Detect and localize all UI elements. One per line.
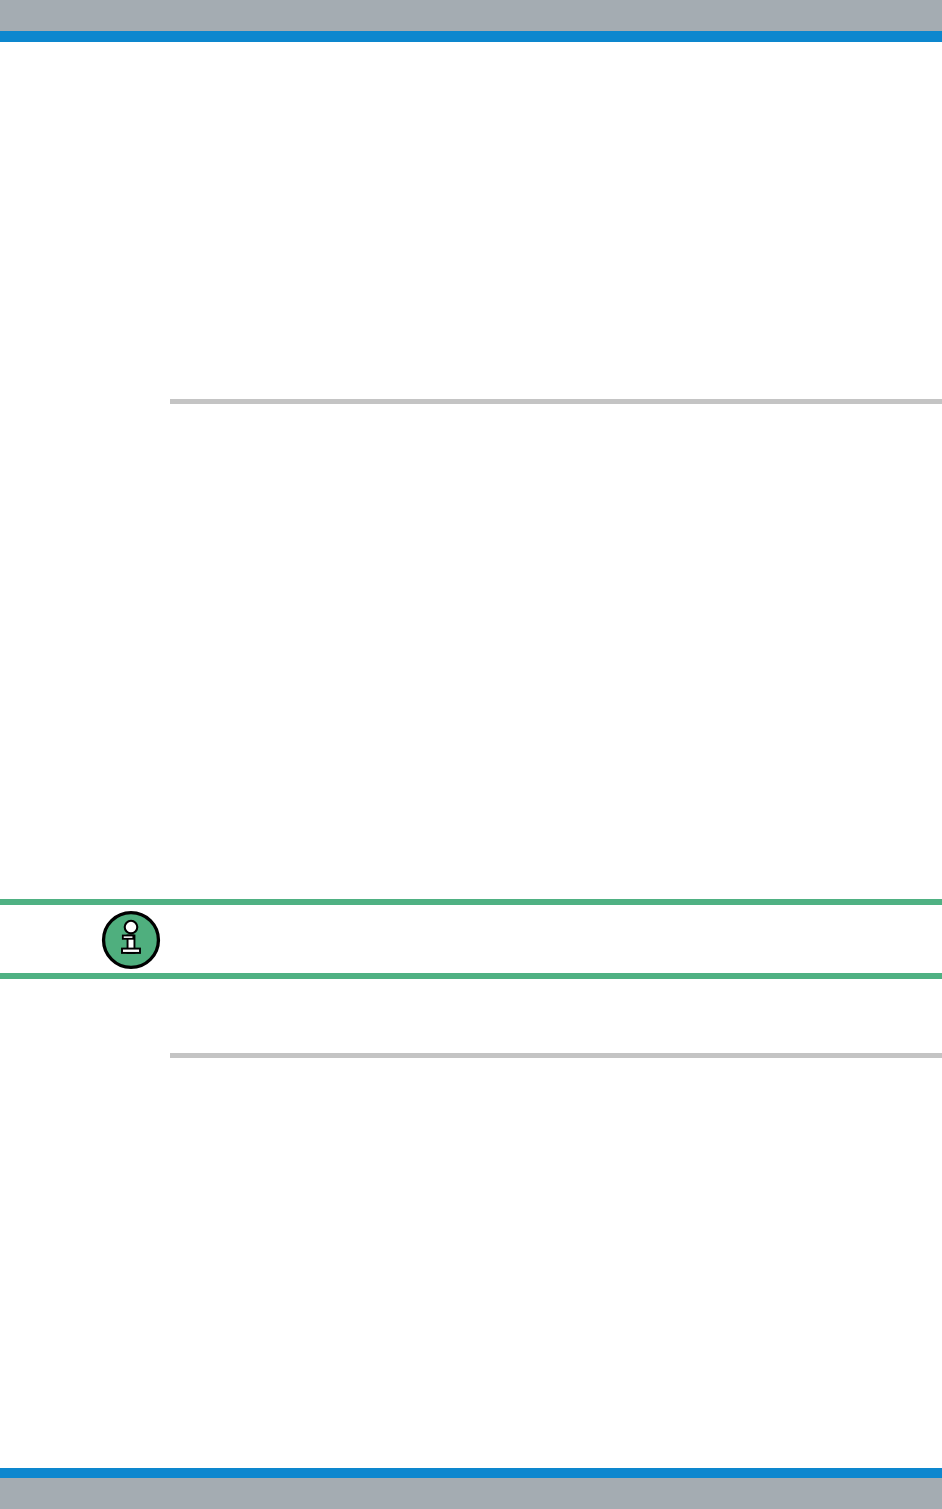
button[interactable]: Information note	[101, 910, 161, 970]
